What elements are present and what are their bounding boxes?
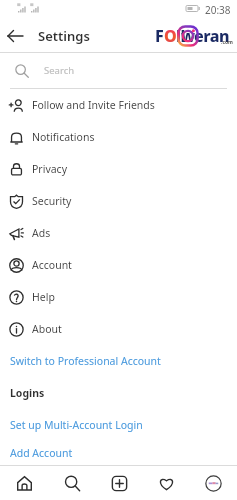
staticText: .com — [221, 39, 233, 46]
button[interactable]: Back — [4, 25, 26, 47]
staticText: 20:38 — [205, 3, 231, 17]
staticText: O — [164, 25, 177, 47]
button[interactable]: Home — [0, 466, 48, 500]
staticText: Security — [32, 194, 72, 208]
button[interactable]: Activity — [143, 466, 190, 500]
staticText: ll — [176, 25, 185, 47]
button[interactable]: Account — [0, 249, 237, 281]
staticText: Privacy — [32, 162, 68, 176]
button[interactable]: Create — [96, 466, 143, 500]
button[interactable]: Ads — [0, 217, 237, 249]
staticText: Switch to Professional Account — [10, 354, 161, 368]
button[interactable]: Search — [48, 466, 96, 500]
staticText: Account — [32, 258, 72, 272]
button[interactable]: Set up Multi-Account Login — [0, 409, 237, 441]
staticText: Search — [44, 64, 75, 77]
button[interactable]: Security — [0, 185, 237, 217]
staticText: Settings — [38, 27, 90, 45]
staticText: Logins — [10, 386, 45, 400]
staticText: Set up Multi-Account Login — [10, 418, 143, 432]
button[interactable]: Add Account — [0, 441, 237, 465]
button[interactable]: About — [0, 313, 237, 345]
staticText: Help — [32, 290, 55, 304]
staticText: About — [32, 322, 62, 336]
button[interactable]: Help — [0, 281, 237, 313]
staticText: eran — [194, 25, 230, 47]
button[interactable]: Profile — [190, 466, 237, 500]
staticText: Notifications — [32, 130, 95, 144]
staticText: Ads — [32, 226, 51, 240]
staticText: Add Account — [10, 446, 73, 460]
button[interactable]: Search — [0, 53, 237, 88]
staticText: Follow and Invite Friends — [32, 98, 155, 112]
staticText: w — [181, 25, 195, 47]
button[interactable]: Privacy — [0, 153, 237, 185]
button[interactable]: Follow and Invite Friends — [0, 89, 237, 121]
staticText: F — [155, 25, 164, 47]
button[interactable]: Notifications — [0, 121, 237, 153]
button[interactable]: Logins — [0, 377, 237, 409]
button[interactable]: Switch to Professional Account — [0, 345, 237, 377]
